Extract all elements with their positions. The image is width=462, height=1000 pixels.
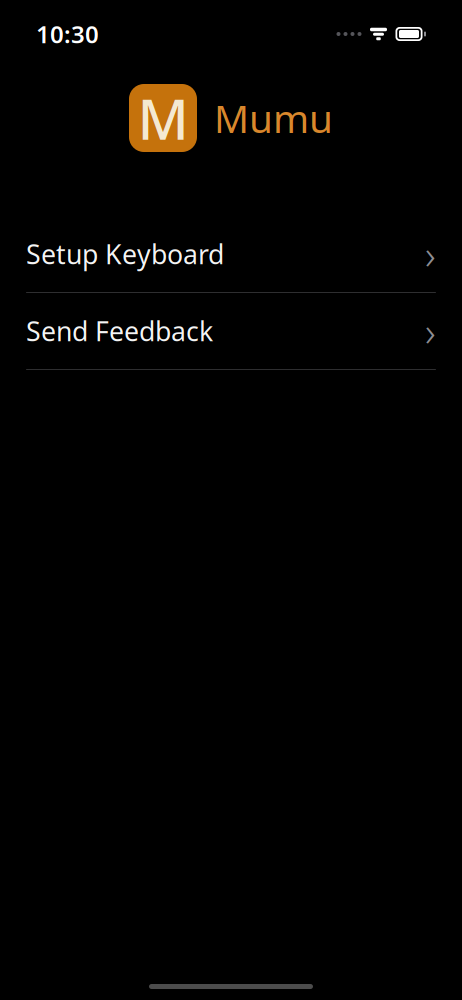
button[interactable]: Send Feedback	[0, 293, 462, 369]
staticText: Setup Keyboard	[26, 236, 224, 272]
staticText: ›	[425, 227, 436, 280]
button[interactable]: Setup Keyboard	[0, 216, 462, 292]
staticText: Send Feedback	[26, 313, 213, 349]
staticText: Mumu	[214, 92, 333, 144]
staticText: M	[137, 81, 188, 155]
staticText: 10:30	[36, 18, 99, 50]
staticText: ›	[425, 304, 436, 357]
